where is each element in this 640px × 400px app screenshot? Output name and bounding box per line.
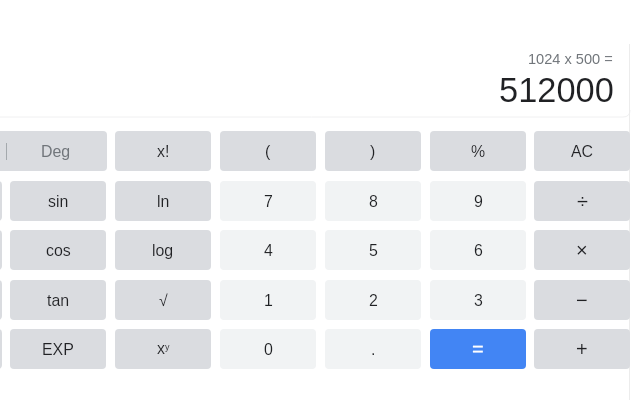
staticText: ÷: [577, 190, 588, 212]
staticText: −: [576, 289, 588, 311]
button[interactable]: 0: [220, 329, 316, 369]
button[interactable]: ln: [115, 181, 211, 221]
button[interactable]: +: [534, 329, 630, 369]
button[interactable]: cos: [10, 230, 106, 270]
button[interactable]: ): [325, 131, 421, 171]
staticText: 4: [264, 242, 273, 260]
button[interactable]: Ans: [0, 329, 2, 369]
staticText: 1024 x 500 =: [528, 51, 613, 67]
staticText: EXP: [42, 341, 74, 359]
staticText: ×: [576, 239, 588, 261]
button[interactable]: 8: [325, 181, 421, 221]
button[interactable]: =: [430, 329, 526, 369]
staticText: 1: [264, 292, 273, 310]
button[interactable]: 6: [430, 230, 526, 270]
staticText: tan: [47, 292, 70, 310]
staticText: =: [472, 338, 484, 360]
staticText: log: [152, 242, 174, 260]
staticText: 2: [369, 292, 378, 310]
button[interactable]: Rad Deg toggle: [0, 131, 107, 171]
staticText: AC: [571, 143, 594, 161]
staticText: 8: [369, 193, 378, 211]
button[interactable]: x!: [115, 131, 211, 171]
button[interactable]: (: [220, 131, 316, 171]
staticText: (: [265, 143, 271, 161]
staticText: xy: [157, 340, 170, 358]
staticText: 9: [474, 193, 483, 211]
button[interactable]: ×: [534, 230, 630, 270]
staticText: 6: [474, 242, 483, 260]
button[interactable]: sin: [10, 181, 106, 221]
button[interactable]: 7: [220, 181, 316, 221]
button[interactable]: 5: [325, 230, 421, 270]
button[interactable]: x to the power y: [115, 329, 211, 369]
staticText: sin: [48, 193, 69, 211]
staticText: √: [159, 292, 168, 310]
staticText: .: [371, 341, 376, 359]
button[interactable]: √: [115, 280, 211, 320]
staticText: 7: [264, 193, 273, 211]
button[interactable]: 9: [430, 181, 526, 221]
staticText: ln: [157, 193, 170, 211]
staticText: x!: [157, 143, 170, 161]
button[interactable]: %: [430, 131, 526, 171]
button[interactable]: log: [115, 230, 211, 270]
staticText: ): [370, 143, 376, 161]
staticText: cos: [46, 242, 71, 260]
button[interactable]: EXP: [10, 329, 106, 369]
button[interactable]: −: [534, 280, 630, 320]
button[interactable]: 2: [325, 280, 421, 320]
staticText: +: [576, 338, 588, 360]
staticText: 5: [369, 242, 378, 260]
button[interactable]: .: [325, 329, 421, 369]
button[interactable]: 1: [220, 280, 316, 320]
button[interactable]: 3: [430, 280, 526, 320]
button[interactable]: Inv: [0, 181, 2, 221]
button[interactable]: e: [0, 280, 2, 320]
staticText: Deg: [41, 143, 71, 161]
button[interactable]: π: [0, 230, 2, 270]
staticText: 0: [264, 341, 273, 359]
staticText: %: [471, 143, 486, 161]
button[interactable]: tan: [10, 280, 106, 320]
button[interactable]: ÷: [534, 181, 630, 221]
staticText: 512000: [499, 71, 614, 109]
staticText: 3: [474, 292, 483, 310]
button[interactable]: 4: [220, 230, 316, 270]
button[interactable]: AC: [534, 131, 630, 171]
